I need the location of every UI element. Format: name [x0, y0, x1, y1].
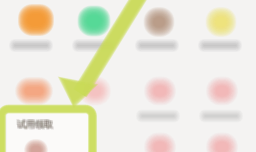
staticText: 试用领取: [18, 119, 54, 130]
staticText: 试用领取: [16, 120, 52, 131]
staticText: 试用领取: [16, 118, 52, 129]
staticText: 试用领取: [17, 120, 53, 131]
staticText: 试用领取: [17, 119, 53, 130]
staticText: 试用领取: [18, 118, 54, 129]
staticText: 试用领取: [18, 120, 54, 131]
button[interactable]: 试用领取: [7, 112, 89, 152]
staticText: 试用领取: [16, 119, 52, 130]
staticText: 试用领取: [17, 118, 53, 129]
